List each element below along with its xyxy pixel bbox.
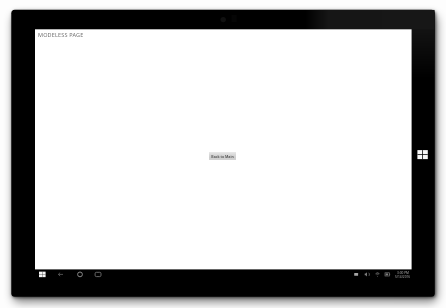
button[interactable]: Back: [57, 269, 64, 280]
staticText: MODELESS PAGE: [38, 31, 84, 38]
button[interactable]: Windows home: [417, 149, 429, 161]
staticText: 3:00 PM: [397, 271, 409, 275]
staticText: Back to Main: [211, 154, 234, 159]
button[interactable]: Start: [39, 269, 46, 280]
button[interactable]: 3:00 PM: [394, 270, 411, 280]
button[interactable]: Task view: [95, 269, 102, 280]
button[interactable]: Search: [76, 269, 83, 280]
button[interactable]: Back to Main: [209, 152, 236, 160]
staticText: 5/14/2016: [395, 275, 411, 279]
